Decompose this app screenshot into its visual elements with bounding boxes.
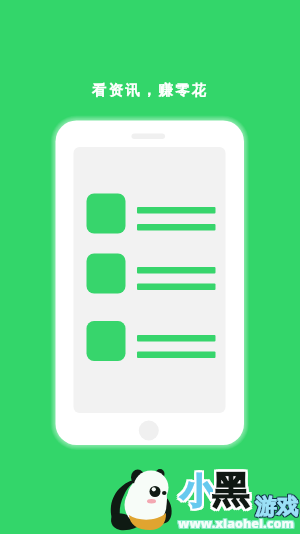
staticText: 游戏	[254, 492, 297, 519]
staticText: 小	[178, 467, 213, 511]
staticText: 小	[182, 471, 217, 515]
staticText: 小	[182, 469, 217, 513]
staticText: 游戏	[254, 493, 297, 520]
staticText: 游戏	[254, 494, 297, 521]
staticText: www.xiaohei.com	[179, 516, 295, 533]
staticText: www.xiaohei.com	[177, 514, 293, 531]
staticText: www.xiaohei.com	[178, 515, 294, 532]
staticText: www.xiaohei.com	[179, 514, 295, 531]
staticText: 小	[180, 469, 215, 513]
staticText: 游戏	[256, 493, 299, 520]
staticText: 黑	[210, 467, 247, 514]
staticText: www.xiaohei.com	[178, 514, 294, 531]
staticText: 黑	[210, 465, 247, 512]
staticText: www.xiaohei.com	[177, 515, 293, 532]
staticText: 黑	[212, 465, 249, 512]
staticText: 黑	[210, 469, 247, 516]
staticText: 黑	[212, 467, 249, 514]
staticText: 黑	[212, 469, 249, 516]
staticText: 黑	[214, 465, 251, 512]
staticText: 小	[178, 471, 213, 515]
staticText: www.xiaohei.com	[178, 516, 294, 533]
staticText: 游戏	[255, 492, 298, 519]
staticText: 黑	[214, 469, 251, 516]
button[interactable]: 看资讯，赚零花	[0, 0, 300, 534]
staticText: www.xiaohei.com	[177, 516, 293, 533]
staticText: www.xiaohei.com	[179, 515, 295, 532]
staticText: 小	[180, 471, 215, 515]
staticText: 游戏	[255, 493, 298, 520]
staticText: 小	[180, 467, 215, 511]
staticText: 游戏	[256, 492, 299, 519]
staticText: 小	[182, 467, 217, 511]
staticText: 黑	[214, 467, 251, 514]
staticText: 看资讯，赚零花	[0, 81, 300, 534]
staticText: 小	[178, 469, 213, 513]
staticText: 游戏	[255, 494, 298, 521]
staticText: 游戏	[256, 494, 299, 521]
